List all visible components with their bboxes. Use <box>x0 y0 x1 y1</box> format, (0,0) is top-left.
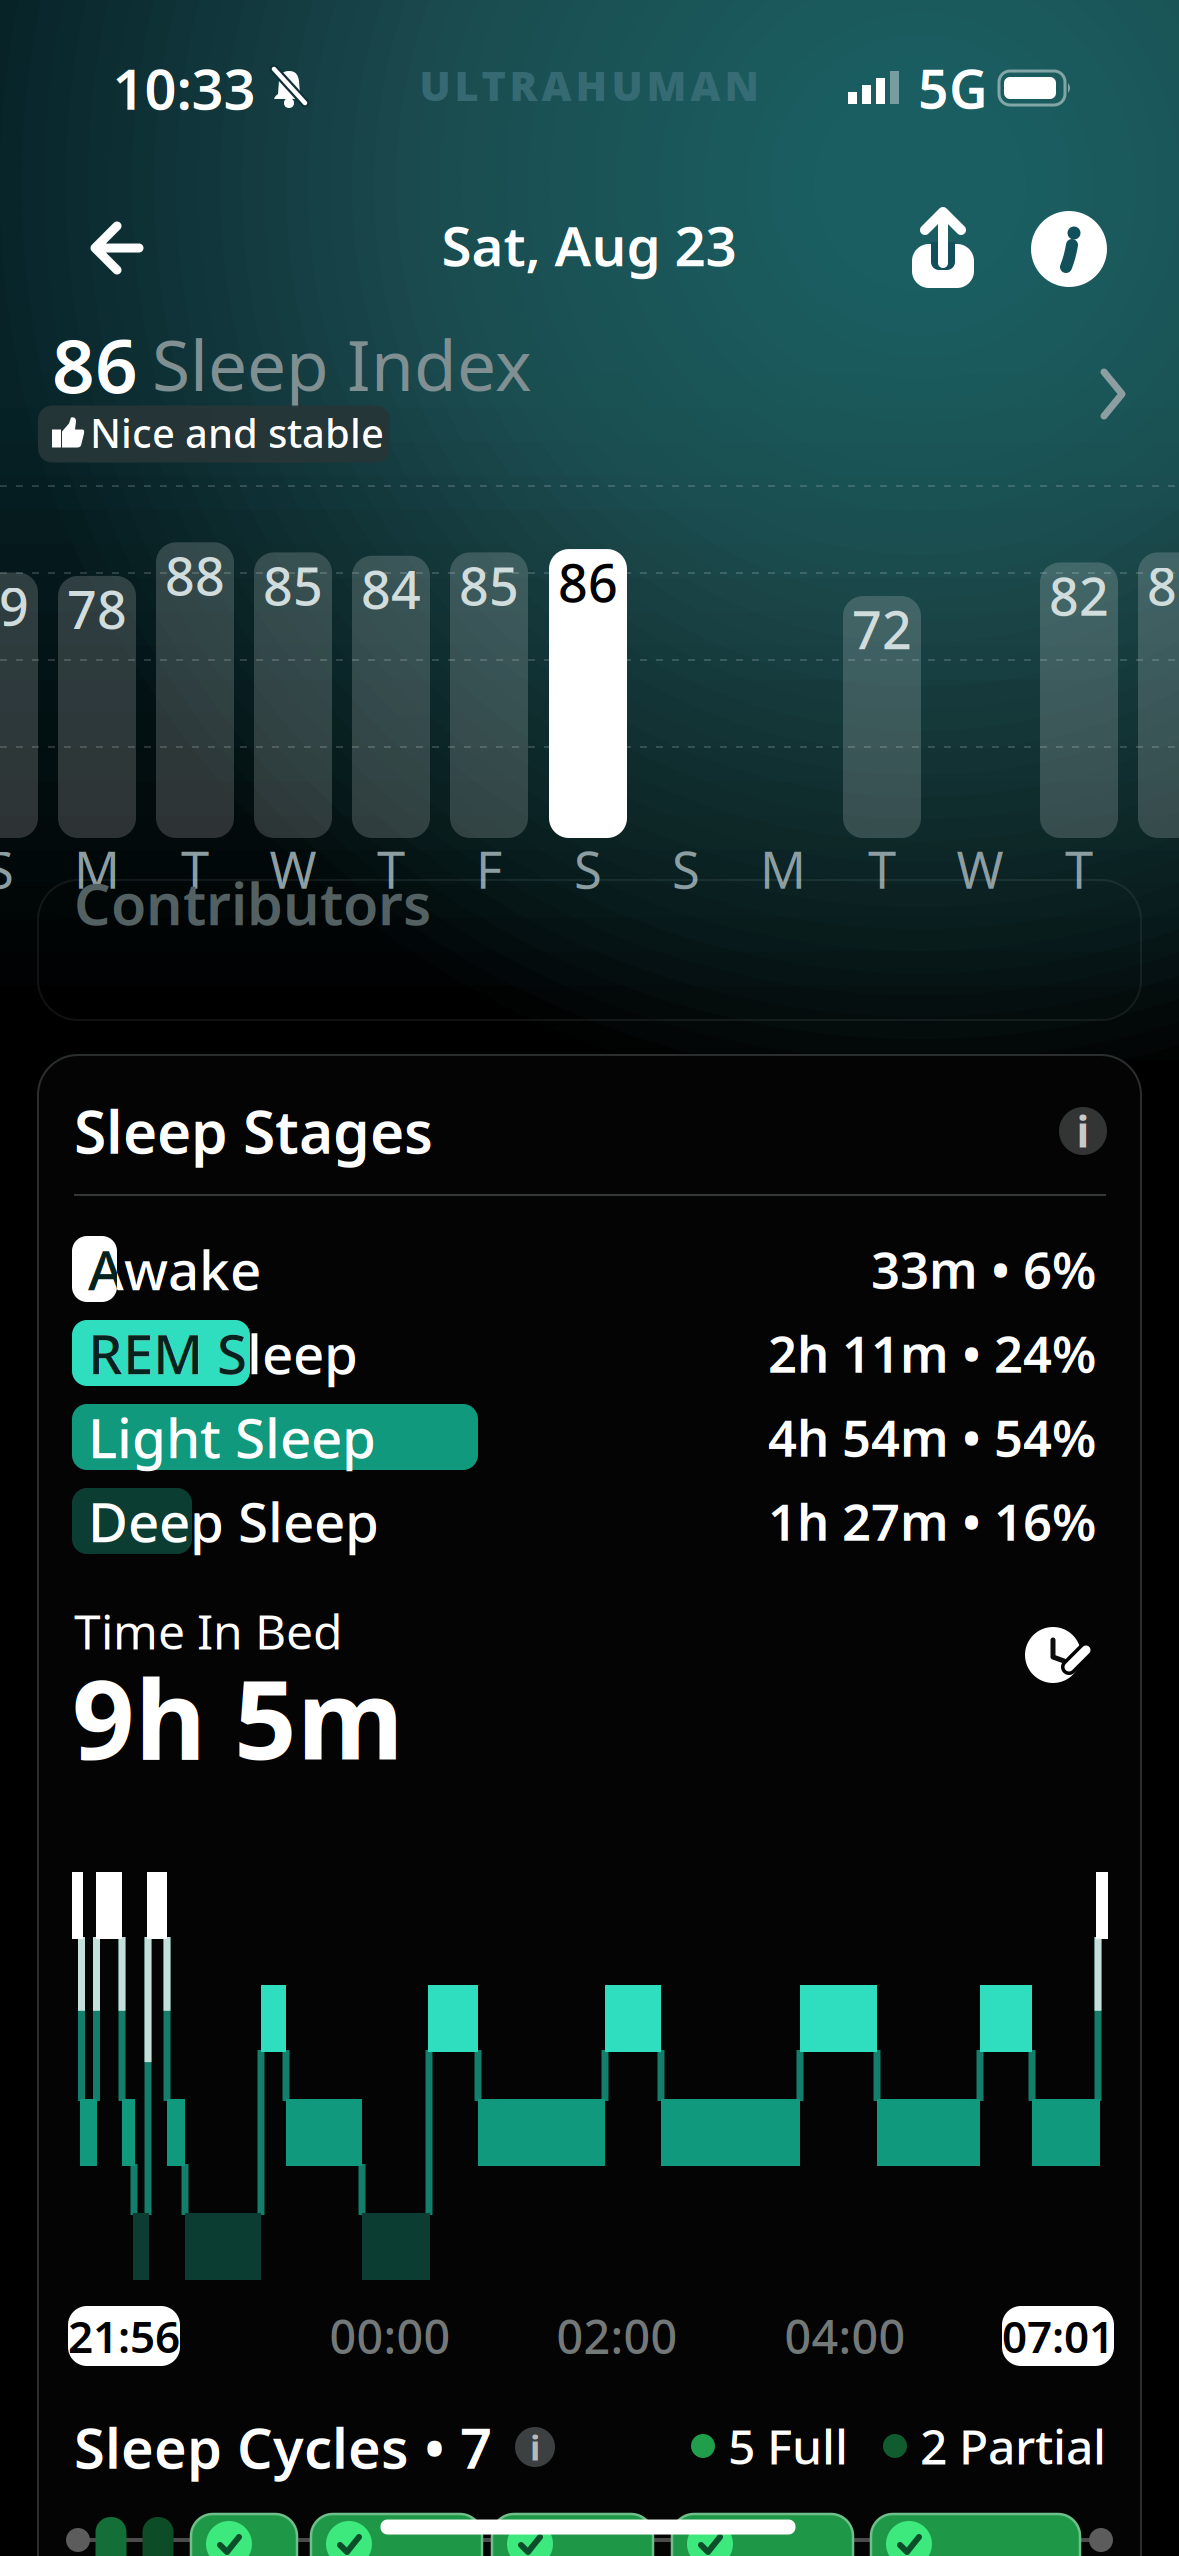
button[interactable] <box>311 2514 482 2556</box>
staticText: 4h 54m • 54% <box>768 1403 1096 1471</box>
staticText: Light Sleep <box>88 1401 376 1473</box>
staticText: 10:33 <box>112 51 255 125</box>
staticText: 9h 5m <box>72 1644 404 1790</box>
staticText: i <box>1076 1103 1089 1159</box>
staticText: S <box>0 835 14 903</box>
staticText: Time In Bed <box>74 1599 343 1663</box>
staticText: 86 <box>558 547 618 617</box>
staticText: REM Sleep <box>88 1317 358 1389</box>
button[interactable]: i <box>1059 1107 1107 1155</box>
button[interactable] <box>871 2514 1080 2556</box>
staticText: 79 <box>0 571 29 640</box>
button[interactable]: 88 <box>156 542 234 838</box>
staticText: W <box>956 835 1003 903</box>
button[interactable] <box>672 2514 853 2556</box>
staticText: S <box>574 835 602 903</box>
staticText: 78 <box>67 574 127 643</box>
staticText: 86 <box>52 314 138 414</box>
staticText: 72 <box>852 595 912 664</box>
staticText: 82 <box>1049 561 1109 630</box>
staticText: 2 Partial <box>920 2414 1106 2478</box>
staticText: 5G <box>918 53 988 123</box>
staticText: 02:00 <box>556 2305 677 2367</box>
staticText: 1h 27m • 16% <box>768 1487 1096 1555</box>
staticText: Awake <box>88 1233 261 1305</box>
staticText: M <box>74 835 120 903</box>
staticText: 85 <box>459 551 519 620</box>
staticText: W <box>269 835 316 903</box>
staticText: Sleep Stages <box>74 1092 433 1170</box>
staticText: REM Sleep <box>88 1317 358 1389</box>
button[interactable]: 85 <box>254 552 332 838</box>
button[interactable]: 86 <box>0 320 1179 470</box>
staticText: 84 <box>361 554 421 623</box>
button[interactable]: 72 <box>843 596 921 838</box>
button[interactable]: 78 <box>58 576 136 838</box>
staticText: Sat, Aug 23 <box>441 209 736 281</box>
staticText: Deep Sleep <box>88 1485 379 1557</box>
button[interactable]: 79 <box>0 573 38 838</box>
staticText: T <box>868 835 896 903</box>
staticText: T <box>1065 835 1093 903</box>
button[interactable] <box>1030 210 1108 288</box>
staticText: 04:00 <box>784 2305 905 2367</box>
staticText: 2h 11m • 24% <box>768 1319 1096 1387</box>
staticText: Contributors <box>74 865 431 941</box>
button[interactable]: i <box>515 2427 555 2467</box>
button[interactable]: 82 <box>1040 562 1118 838</box>
staticText: 07:01 <box>1002 2307 1114 2365</box>
staticText: i <box>530 2424 540 2470</box>
button[interactable] <box>73 214 153 282</box>
button[interactable]: 85 <box>1138 552 1179 838</box>
staticText: 5 Full <box>728 2414 848 2478</box>
staticText: Sleep Index <box>152 318 532 410</box>
staticText: T <box>377 835 405 903</box>
staticText: ULTRAHUMAN <box>419 58 758 112</box>
button[interactable] <box>492 2514 653 2556</box>
button[interactable]: 84 <box>352 556 430 838</box>
staticText: Sleep Cycles • 7 <box>74 2410 492 2484</box>
staticText: F <box>476 835 502 903</box>
button[interactable] <box>191 2514 297 2556</box>
button[interactable]: 86 <box>549 549 627 838</box>
button[interactable] <box>1022 1618 1102 1698</box>
button[interactable] <box>898 205 988 295</box>
staticText: Awake <box>88 1233 261 1305</box>
staticText: 88 <box>165 541 225 610</box>
staticText: S <box>672 835 700 903</box>
staticText: 33m • 6% <box>871 1235 1096 1303</box>
staticText: T <box>181 835 209 903</box>
staticText: Nice and stable <box>90 406 384 459</box>
staticText: 21:56 <box>68 2307 180 2365</box>
staticText: 00:00 <box>329 2305 450 2367</box>
button[interactable]: 85 <box>450 552 528 838</box>
staticText: 85 <box>263 551 323 620</box>
staticText: M <box>760 835 806 903</box>
staticText: 85 <box>1147 551 1179 620</box>
